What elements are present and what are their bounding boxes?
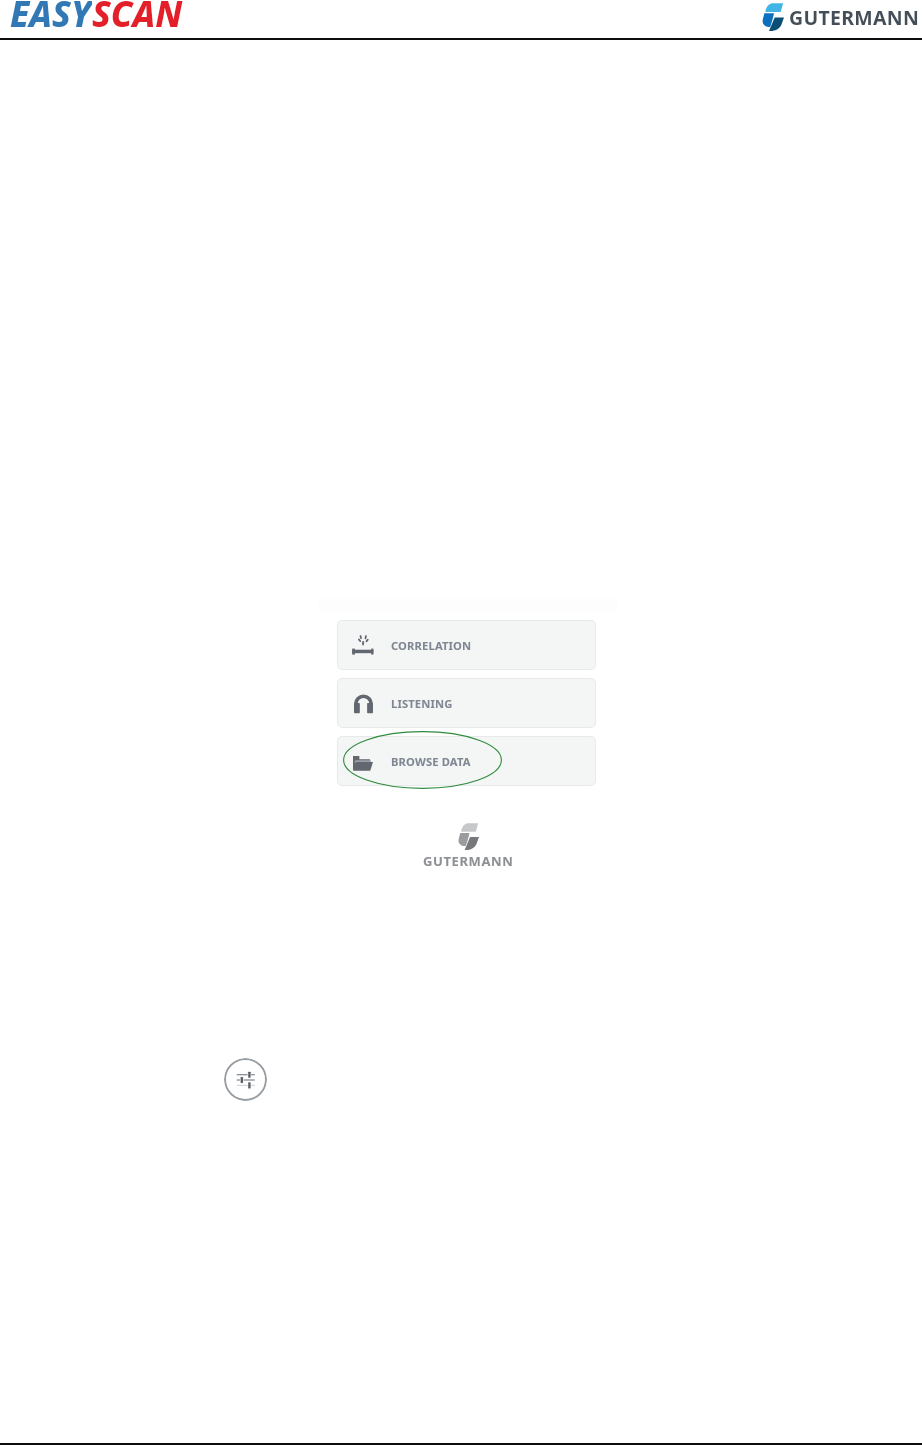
staticText: GUTERMANN — [423, 852, 514, 870]
staticText: CORRELATION — [391, 638, 472, 653]
staticText: BROWSE DATA — [391, 754, 471, 769]
staticText: SCAN — [92, 0, 183, 30]
button[interactable]: LISTENING — [337, 678, 596, 728]
staticText: GUTERMANN — [789, 4, 920, 31]
staticText: EASY — [10, 0, 92, 30]
button[interactable]: BROWSE DATA — [337, 736, 596, 786]
staticText: LISTENING — [391, 696, 453, 711]
button[interactable]: Settings — [224, 1058, 267, 1101]
button[interactable]: CORRELATION — [337, 620, 596, 670]
